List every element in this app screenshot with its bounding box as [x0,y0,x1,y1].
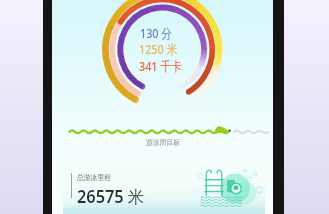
staticText: 341 千卡 [139,57,182,75]
staticText: 26575 米 [77,185,144,208]
staticText: 游泳周目标 [146,138,180,147]
staticText: 130 分 [140,24,173,42]
staticText: 总游泳里程 [77,173,111,182]
staticText: 1250 米 [139,40,177,58]
button[interactable]: 总游泳里程 [63,163,265,214]
